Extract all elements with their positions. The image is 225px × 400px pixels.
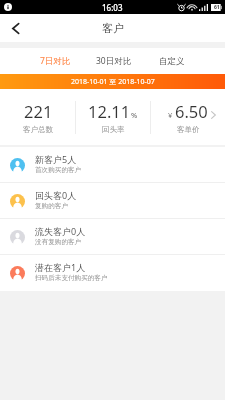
button[interactable]: 新客户5人 [0,147,225,183]
button[interactable]: 回头客0人 [0,183,225,219]
staticText: 客户 [102,21,124,35]
staticText: 7日对比 [40,55,71,67]
staticText: 61 [214,4,220,11]
button[interactable]: 221 [0,89,75,145]
staticText: 首次购买的客户 [35,166,82,174]
staticText: ¥ [168,110,173,120]
staticText: 客单价 [177,125,200,134]
staticText: 新客户5人 [35,153,77,165]
staticText: 12.11 [88,100,131,122]
staticText: 回头客0人 [35,189,77,201]
button[interactable]: 30日对比 [85,48,143,74]
staticText: 没有复购的客户 [35,238,82,246]
staticText: 2018-10-01 至 2018-10-07 [71,77,155,87]
staticText: 流失客户0人 [35,225,86,237]
button[interactable]: 潜在客户1人 [0,255,225,291]
staticText: 复购的客户 [35,202,68,210]
staticText: 潜在客户1人 [35,261,86,273]
button[interactable]: 流失客户0人 [0,219,225,255]
button[interactable]: 7日对比 [26,48,85,74]
staticText: % [131,110,138,120]
button[interactable]: 自定义 [143,48,201,74]
staticText: 回头率 [102,125,125,134]
staticText: 自定义 [159,56,185,67]
staticText: 221 [24,100,53,122]
staticText: 30日对比 [96,55,132,67]
button[interactable]: ¥ [150,89,225,145]
staticText: 16:03 [102,2,123,13]
button[interactable]: Back [0,14,30,42]
staticText: 客户总数 [23,125,53,134]
staticText: 6.50 [175,100,208,122]
button[interactable]: 12.11 [75,89,150,145]
staticText: 扫码后未支付购买的客户 [35,274,108,282]
